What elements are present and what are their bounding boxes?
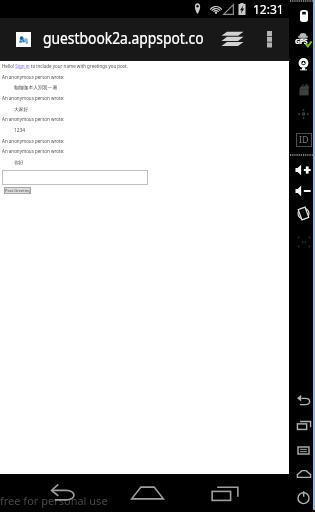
button[interactable]: Menu [292, 442, 315, 458]
button[interactable]: Post Greeting [4, 187, 31, 194]
button[interactable]: Tabs [216, 26, 248, 52]
staticText: guestbook2a.appspot.co [43, 27, 204, 49]
staticText: ID [299, 133, 309, 145]
staticText: An anonymous person wrote: [2, 138, 65, 144]
button[interactable]: Device ID [292, 131, 315, 148]
button[interactable]: Keypad [292, 235, 315, 249]
button[interactable]: Home [292, 466, 315, 482]
staticText: An anonymous person wrote: [2, 74, 65, 80]
staticText: 咖咖咖本人別我一遍 [14, 84, 58, 90]
staticText: Hello! Sign in to include your name with… [2, 63, 128, 69]
staticText: free for personal use [0, 493, 108, 508]
button[interactable]: Rotate screen [292, 205, 315, 221]
button[interactable]: Power [292, 489, 315, 505]
staticText: 1234 [14, 127, 25, 134]
staticText: GPS [295, 37, 308, 47]
button[interactable]: Recents [209, 480, 241, 506]
button[interactable]: More options [256, 25, 282, 51]
staticText: An anonymous person wrote: [2, 95, 65, 101]
button[interactable] [2, 170, 148, 185]
button[interactable]: Home [129, 480, 165, 506]
staticText: Post Greeting [5, 188, 31, 193]
button[interactable]: Volume up [292, 162, 315, 177]
staticText: An anonymous person wrote: [2, 148, 65, 154]
button[interactable]: D-pad [292, 106, 315, 122]
button[interactable]: Recent apps [292, 417, 315, 433]
button[interactable]: Record video [293, 81, 314, 98]
button[interactable]: GPS [292, 32, 315, 48]
button[interactable]: Camera [293, 56, 314, 72]
staticText: 你好 [14, 159, 24, 165]
staticText: 12:31 [253, 1, 284, 17]
button[interactable]: Battery level [294, 7, 313, 25]
button[interactable]: Back [46, 481, 80, 507]
button[interactable]: Volume down [292, 183, 315, 198]
button[interactable]: Back [292, 393, 315, 409]
staticText: 大家好 [14, 106, 29, 112]
staticText: An anonymous person wrote: [2, 116, 65, 122]
